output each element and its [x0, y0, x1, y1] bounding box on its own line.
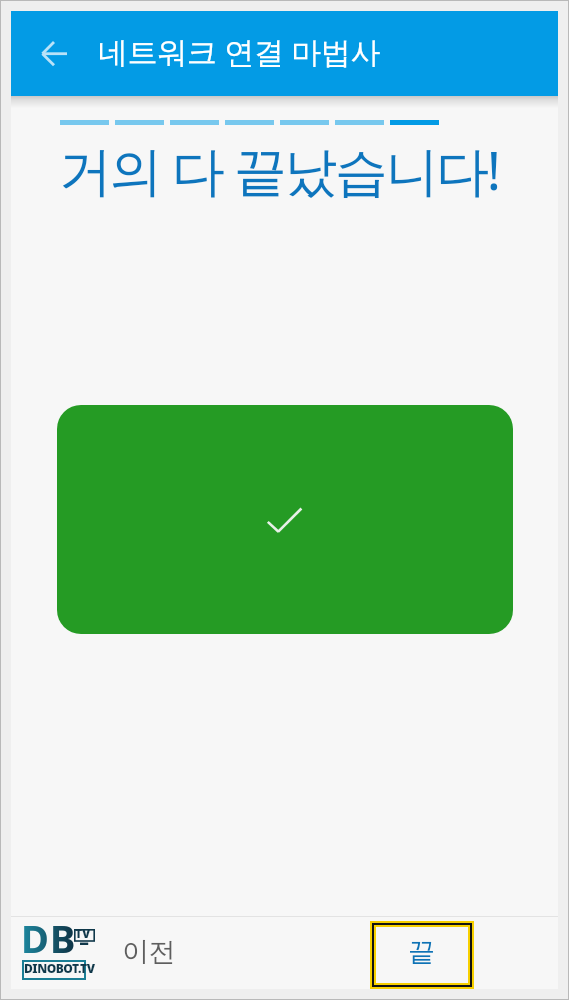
staticText: DINOBOT.TV [24, 960, 104, 976]
button[interactable]: Back [31, 30, 79, 78]
staticText: 이전 [122, 935, 175, 969]
button[interactable]: 끝 [374, 925, 470, 985]
staticText: 끝 [408, 935, 435, 969]
staticText: DB [21, 912, 77, 964]
staticText: 거의 다 끝났습니다! [59, 133, 499, 205]
button[interactable]: Connection succeeded [57, 405, 513, 634]
staticText: 네트워크 연결 마법사 [98, 31, 381, 72]
button[interactable]: 이전 [96, 917, 200, 987]
staticText: TV [75, 925, 91, 941]
